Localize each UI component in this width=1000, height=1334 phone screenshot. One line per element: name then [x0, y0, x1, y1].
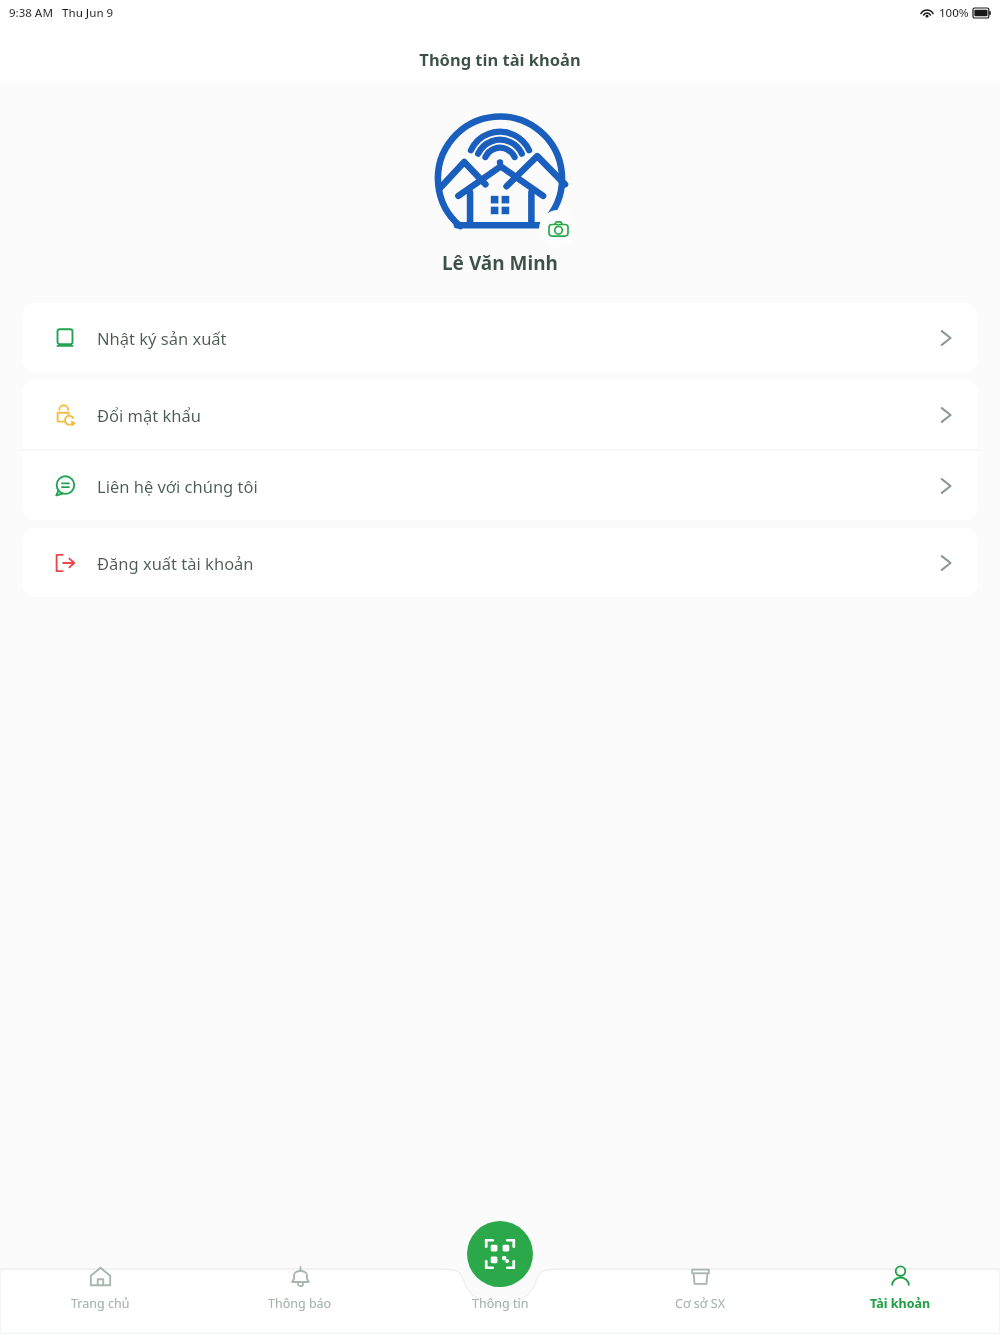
button[interactable]: Đổi mật khẩu [22, 380, 978, 449]
staticText: Nhật ký sản xuất [97, 327, 227, 349]
staticText: Lê Văn Minh [442, 250, 558, 276]
button[interactable]: Change photo [539, 210, 577, 248]
staticText: Đổi mật khẩu [97, 404, 201, 426]
staticText: Thông báo [268, 1295, 332, 1312]
staticText: Thông tin tài khoản [419, 48, 581, 70]
staticText: Trang chủ [71, 1295, 130, 1312]
staticText: Cơ sở SX [675, 1295, 725, 1312]
button[interactable]: Đăng xuất tài khoản [22, 528, 978, 597]
button[interactable]: Scan QR code [467, 1221, 533, 1287]
staticText: Tài khoản [870, 1295, 931, 1312]
staticText: Liên hệ với chúng tôi [97, 475, 258, 497]
button[interactable]: Thông tin [400, 1261, 600, 1316]
staticText: 9:38 AM [9, 5, 53, 21]
button[interactable]: Liên hệ với chúng tôi [22, 451, 978, 520]
staticText: Đăng xuất tài khoản [97, 552, 254, 574]
button[interactable]: Cơ sở SX [600, 1261, 800, 1316]
button[interactable]: Nhật ký sản xuất [22, 303, 978, 372]
staticText: Thu Jun 9 [62, 5, 114, 21]
button[interactable]: Trang chủ [0, 1261, 200, 1316]
staticText: 100% [939, 5, 969, 21]
button[interactable]: Tài khoản [800, 1261, 1000, 1316]
button[interactable]: Thông báo [200, 1261, 400, 1316]
staticText: Thông tin [472, 1295, 529, 1312]
